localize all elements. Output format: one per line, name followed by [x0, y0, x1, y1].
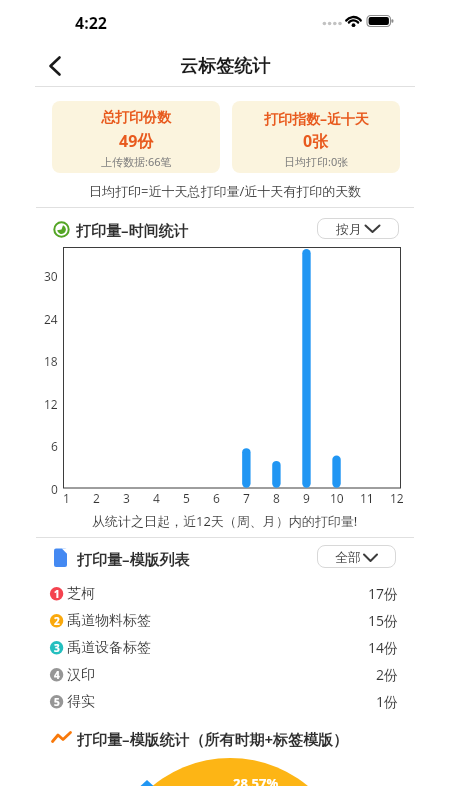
staticText: 0张	[303, 130, 329, 150]
staticText: 6	[51, 438, 58, 454]
staticText: 18	[44, 353, 58, 369]
staticText: 10	[330, 490, 344, 505]
staticText: 芝柯	[67, 585, 95, 603]
staticText: 2份	[376, 665, 399, 684]
staticText: 总打印份数	[101, 109, 171, 127]
staticText: 禹道设备标签	[67, 639, 151, 657]
staticText: 12	[44, 396, 58, 412]
staticText: 11	[360, 490, 374, 505]
staticText: 汉印	[67, 666, 95, 684]
staticText: 得实	[67, 693, 95, 711]
staticText: 5	[183, 490, 190, 505]
staticText: 打印指数–近十天	[264, 109, 369, 127]
staticText: 6	[213, 490, 220, 505]
staticText: 打印量–时间统计	[76, 220, 189, 239]
staticText: 从统计之日起，近12天（周、月）内的打印量!	[92, 512, 358, 530]
staticText: 1	[54, 587, 60, 601]
staticText: 4	[54, 668, 60, 682]
staticText: 7	[243, 490, 250, 505]
staticText: 禹道物料标签	[67, 612, 151, 630]
staticText: 30	[44, 268, 58, 284]
staticText: 2	[54, 614, 60, 628]
staticText: 打印量–模版统计（所有时期+标签模版）	[77, 729, 349, 748]
staticText: 4:22	[75, 12, 107, 30]
staticText: 2	[93, 490, 100, 505]
staticText: 3	[54, 641, 60, 655]
staticText: 上传数据:66笔	[101, 154, 172, 169]
staticText: 日均打印:0张	[284, 154, 349, 169]
staticText: 8	[273, 490, 280, 505]
staticText: 15份	[368, 611, 399, 630]
staticText: 14份	[368, 638, 399, 657]
staticText: 3	[123, 490, 130, 505]
staticText: 5	[54, 695, 60, 709]
staticText: 1	[63, 490, 70, 505]
staticText: 24	[44, 311, 58, 327]
staticText: 按月	[336, 221, 362, 237]
staticText: 0	[51, 481, 58, 497]
staticText: 4	[153, 490, 160, 505]
staticText: 打印量–模版列表	[77, 549, 190, 568]
staticText: 9	[303, 490, 310, 505]
staticText: 1份	[376, 692, 399, 711]
staticText: 日均打印=近十天总打印量/近十天有打印的天数	[89, 182, 362, 200]
staticText: 全部	[335, 549, 361, 565]
staticText: 28.57%	[233, 774, 279, 792]
staticText: 云标签统计	[180, 55, 270, 78]
staticText: 12	[390, 490, 404, 505]
staticText: 17份	[368, 584, 399, 603]
staticText: 49份	[119, 130, 154, 150]
